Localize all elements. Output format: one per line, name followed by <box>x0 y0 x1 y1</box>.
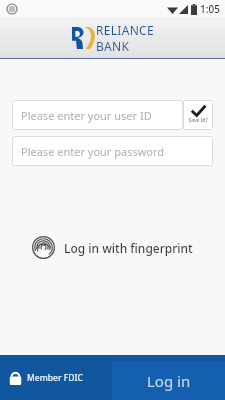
button[interactable]: Member FDIC <box>0 355 112 400</box>
staticText: Please enter your password <box>21 144 165 159</box>
staticText: Please enter your user ID <box>21 108 152 123</box>
staticText: Save Id? <box>188 117 208 124</box>
button[interactable]: Log in <box>112 361 225 400</box>
staticText: RELIANCE <box>96 22 154 38</box>
button[interactable]: Log in with fingerprint <box>24 232 201 263</box>
button[interactable]: Save ID <box>183 100 213 130</box>
staticText: Member FDIC <box>27 372 83 384</box>
staticText: Log in <box>147 371 191 391</box>
staticText: BANK <box>96 38 130 54</box>
staticText: 1:05 <box>200 2 220 16</box>
staticText: Log in with fingerprint <box>64 240 193 256</box>
button[interactable]: Please enter your password <box>12 136 213 166</box>
button[interactable]: Please enter your user ID <box>12 100 183 130</box>
